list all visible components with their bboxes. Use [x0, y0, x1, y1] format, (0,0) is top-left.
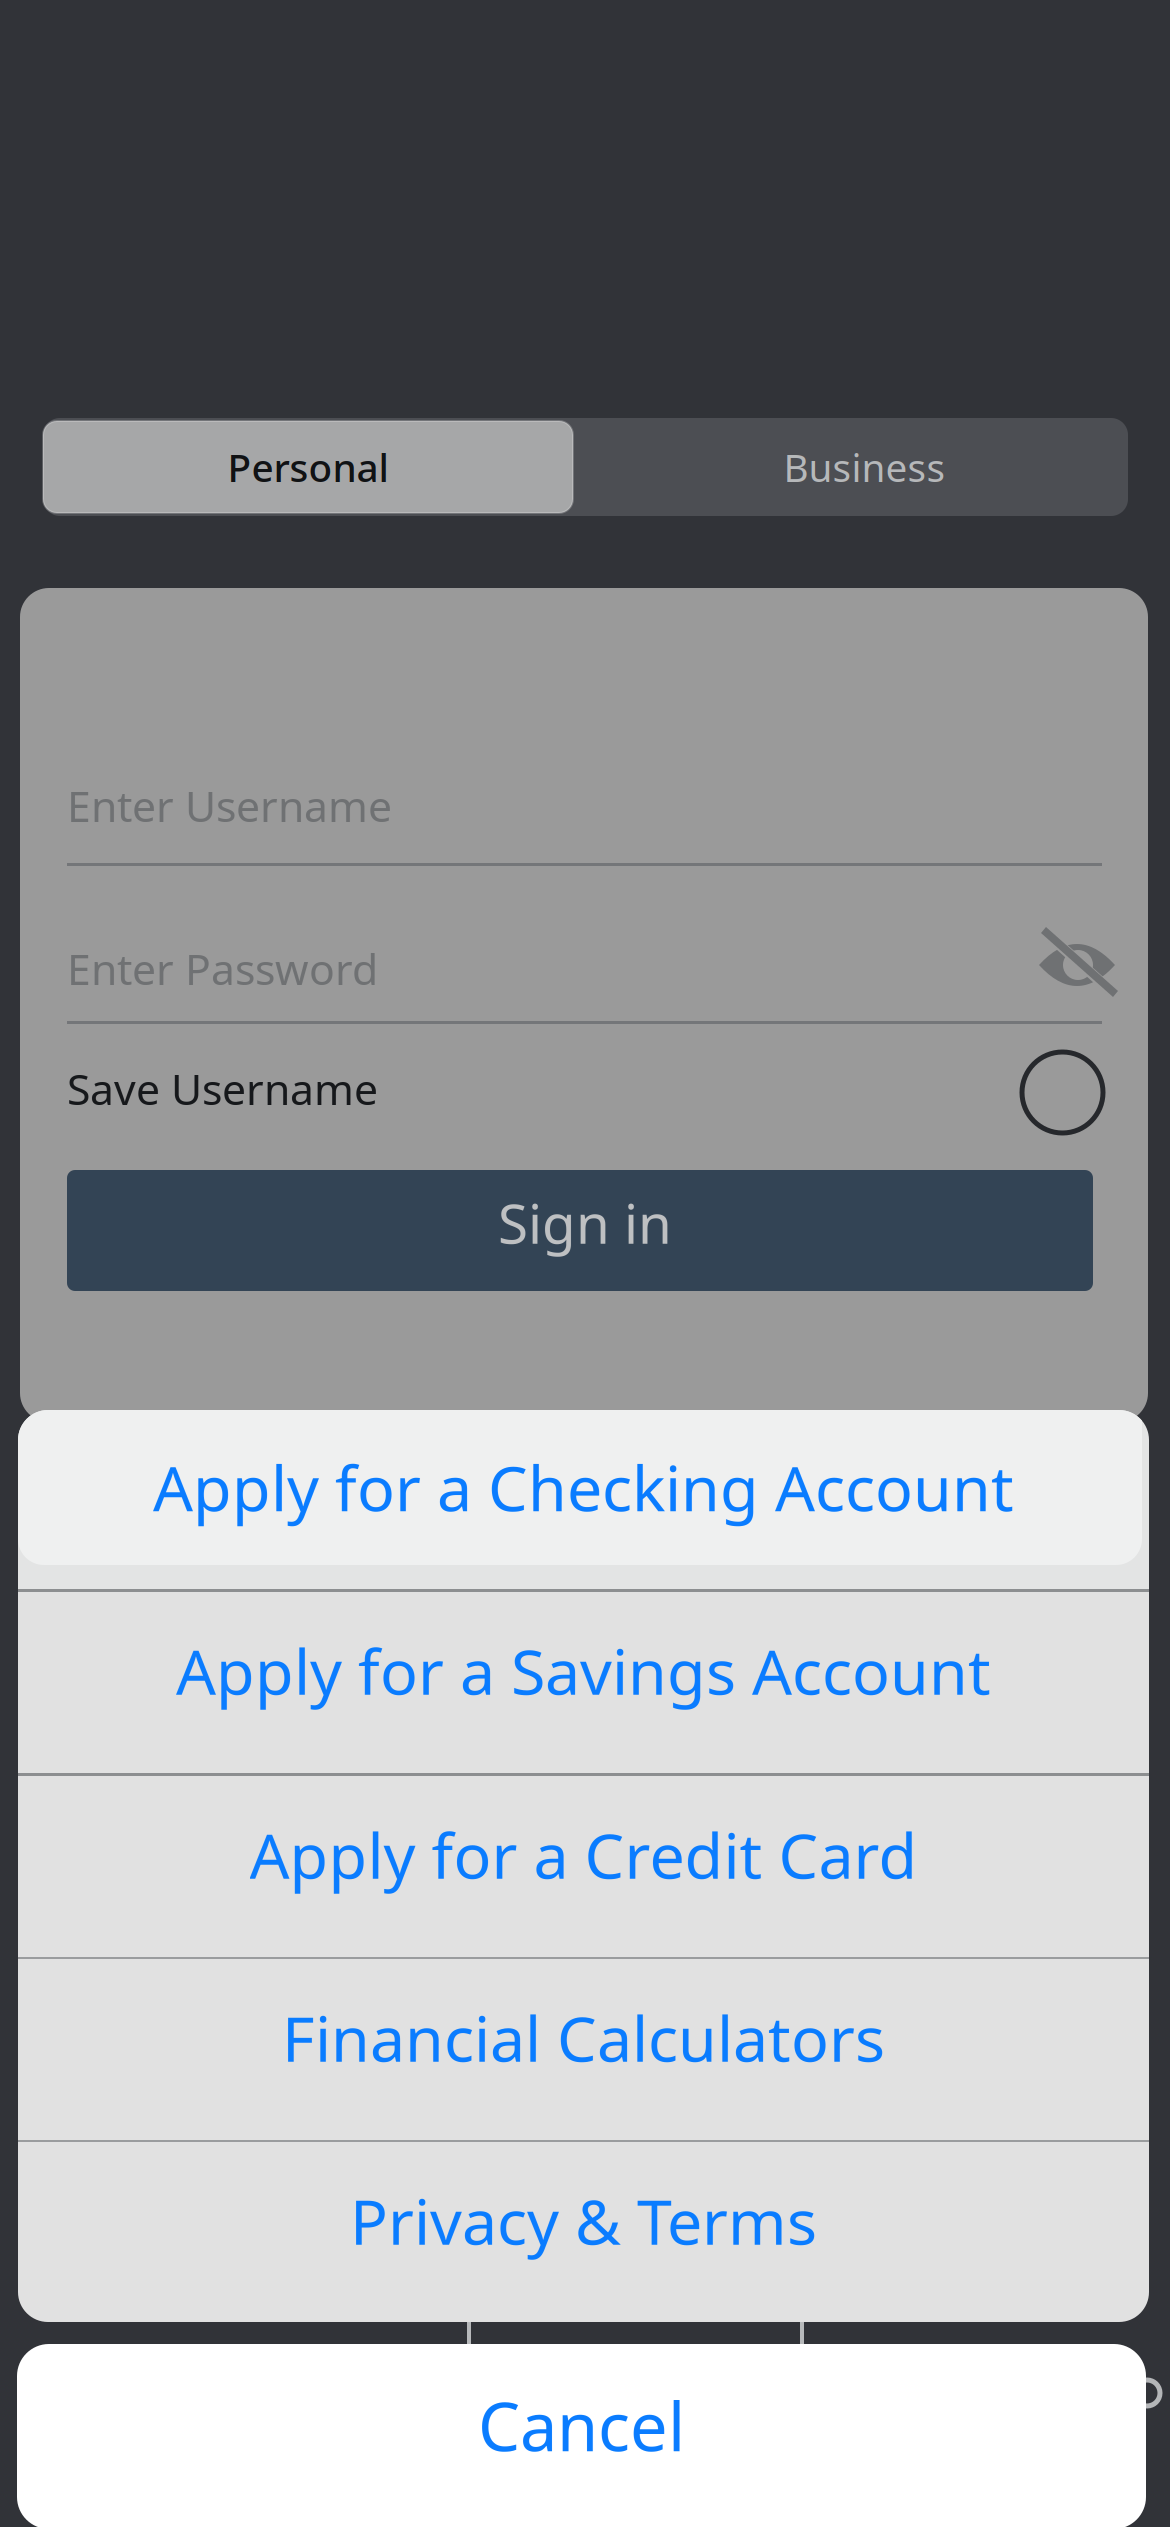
staticText: Apply for a Credit Card: [249, 1813, 917, 1896]
staticText: Apply for a Savings Account: [176, 1629, 991, 1712]
button[interactable]: Apply for a Checking Account: [18, 1409, 1149, 1589]
button[interactable]: Show password: [1038, 928, 1116, 1002]
button[interactable]: Privacy & Terms: [18, 2142, 1149, 2323]
staticText: Privacy & Terms: [350, 2179, 817, 2262]
staticText: Apply for a Checking Account: [153, 1445, 1014, 1529]
staticText: Save Username: [67, 1060, 378, 1117]
staticText: Enter Password: [67, 940, 378, 997]
button[interactable]: Cancel: [17, 2344, 1146, 2527]
button[interactable]: Save Username: [1022, 1052, 1103, 1133]
staticText: Sign in: [498, 1186, 672, 1259]
staticText: Personal: [227, 441, 388, 493]
button[interactable]: Apply for a Credit Card: [18, 1776, 1149, 1957]
staticText: Cancel: [478, 2381, 685, 2470]
button[interactable]: Financial Calculators: [18, 1959, 1149, 2140]
button[interactable]: Apply for a Savings Account: [18, 1592, 1149, 1773]
button[interactable]: Business: [573, 421, 1124, 513]
staticText: Enter Username: [67, 777, 392, 834]
button[interactable]: Personal: [43, 421, 573, 513]
staticText: Business: [783, 441, 945, 493]
button[interactable]: Sign in: [67, 1170, 1093, 1291]
staticText: Financial Calculators: [282, 1996, 885, 2079]
